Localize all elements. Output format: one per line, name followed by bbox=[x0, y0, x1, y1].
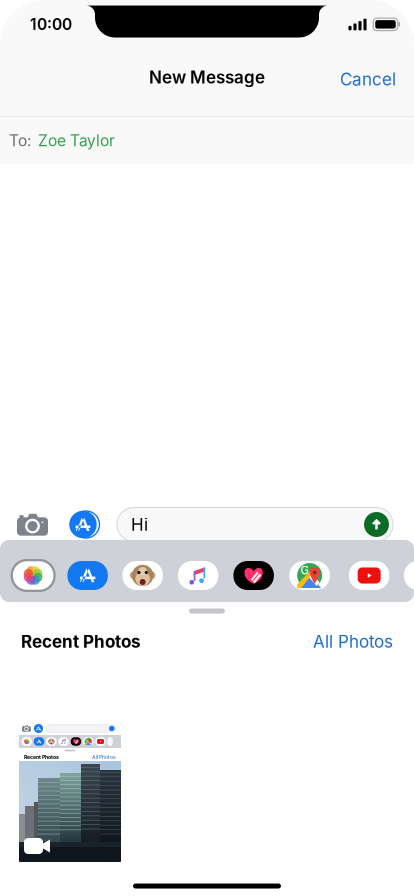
button[interactable]: Photos bbox=[5, 554, 61, 596]
button[interactable]: All Photos bbox=[313, 631, 393, 652]
button[interactable]: Maps bbox=[282, 554, 337, 596]
staticText: Zoe Taylor bbox=[38, 131, 115, 150]
staticText: All Photos bbox=[92, 754, 116, 760]
staticText: 10:00 bbox=[30, 15, 72, 34]
button[interactable]: App Store bbox=[55, 504, 111, 544]
button[interactable]: Camera bbox=[10, 504, 55, 544]
staticText: Hi bbox=[131, 514, 148, 535]
button[interactable]: App Store bbox=[60, 554, 115, 596]
button[interactable]: Recent photo, screenshot bbox=[19, 717, 121, 862]
staticText: New Message bbox=[149, 67, 265, 88]
button[interactable]: Memoji bbox=[115, 554, 170, 596]
staticText: All Photos bbox=[313, 631, 393, 652]
button[interactable]: To: bbox=[0, 117, 414, 164]
staticText: Recent Photos bbox=[24, 754, 59, 760]
button[interactable]: Cancel bbox=[322, 58, 414, 101]
staticText: G bbox=[300, 564, 308, 577]
button[interactable]: YouTube bbox=[341, 554, 397, 596]
staticText: To: bbox=[9, 131, 31, 150]
staticText: Cancel bbox=[340, 69, 396, 90]
button[interactable]: Digital Touch bbox=[226, 554, 281, 596]
button[interactable]: Send bbox=[360, 506, 393, 542]
button[interactable]: More bbox=[396, 554, 414, 596]
staticText: G bbox=[85, 738, 88, 742]
button[interactable]: Music bbox=[170, 554, 226, 596]
staticText: Recent Photos bbox=[21, 631, 141, 652]
